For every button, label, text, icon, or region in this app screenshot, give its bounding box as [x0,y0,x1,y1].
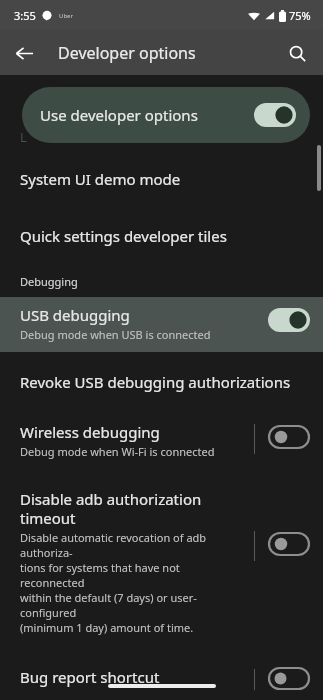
staticText: Bug report shortcut [20,667,160,687]
button[interactable]: Disable adb authorization timeout [0,481,323,645]
staticText: Disable automatic revocation of adb auth… [20,530,246,635]
button[interactable]: Use developer options [22,87,310,143]
button[interactable]: USB debugging [0,297,323,352]
staticText: USB debugging [20,305,130,325]
staticText: Uber [59,12,73,20]
button[interactable]: Revoke USB debugging authorizations [0,366,323,398]
staticText: Use developer options [40,105,254,125]
button[interactable]: Quick settings developer tiles [0,220,323,252]
staticText: Disable adb authorization timeout [20,489,202,528]
staticText: Wireless debugging [20,422,160,442]
button[interactable]: Wireless debugging [0,414,323,469]
staticText: Debug mode when USB is connected [20,327,211,342]
button[interactable]: Bug report shortcut [0,659,323,700]
staticText: Debug mode when Wi-Fi is connected [20,444,215,459]
staticText: L [20,128,27,146]
staticText: Developer options [58,42,196,64]
staticText: Debugging [20,274,78,289]
staticText: 75% [289,8,311,23]
staticText: Revoke USB debugging authorizations [20,372,291,392]
staticText: 3:55 [14,8,36,23]
staticText: Quick settings developer tiles [20,226,227,246]
button[interactable]: Search [279,35,315,71]
button[interactable]: System UI demo mode [0,163,323,195]
staticText: System UI demo mode [20,169,181,189]
button[interactable]: Back [6,35,42,71]
